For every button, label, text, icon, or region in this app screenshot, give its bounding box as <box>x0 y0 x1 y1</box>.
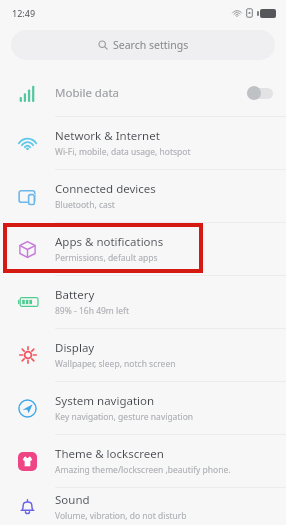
staticText: Network & Internet <box>55 128 160 144</box>
staticText: Theme & lockscreen <box>55 446 164 462</box>
staticText: Wi-Fi, mobile, data usage, hotspot <box>55 146 191 158</box>
other: Battery <box>18 296 38 308</box>
other: Apps and notifications <box>18 240 37 259</box>
button[interactable]: Network and Internet <box>0 117 286 169</box>
staticText: Wallpaper, sleep, notch screen <box>55 358 176 370</box>
other: Theme and lockscreen <box>18 452 37 471</box>
staticText: Permissions, default apps <box>55 252 158 264</box>
staticText: Amazing theme/lockscreen ,beautify phone… <box>55 464 231 476</box>
button[interactable]: Connected devices <box>0 170 286 222</box>
button[interactable]: Battery <box>0 276 286 328</box>
other: Sound <box>19 498 36 515</box>
button[interactable]: Display <box>0 329 286 381</box>
button[interactable]: System navigation <box>0 382 286 434</box>
staticText: 12:49 <box>12 7 36 19</box>
other: Network and Internet <box>18 134 37 153</box>
staticText: System navigation <box>55 393 155 409</box>
other: System navigation <box>18 399 37 418</box>
button[interactable]: Apps and notifications <box>0 223 286 275</box>
other: Mobile data <box>19 85 36 102</box>
staticText: Key navigation, gesture navigation <box>55 411 194 423</box>
button[interactable]: Sound <box>0 488 286 525</box>
staticText: Volume, vibration, do not disturb <box>55 510 187 522</box>
other: Display <box>19 346 37 364</box>
button[interactable]: Search settings <box>11 30 275 60</box>
staticText: Sound <box>55 492 90 508</box>
staticText: Mobile data <box>55 85 247 101</box>
staticText: Battery <box>55 287 95 303</box>
button[interactable]: Theme and lockscreen <box>0 435 286 487</box>
other: Connected devices <box>18 187 37 206</box>
staticText: Display <box>55 340 95 356</box>
staticText: Bluetooth, cast <box>55 199 115 211</box>
button[interactable]: Mobile data <box>0 70 286 116</box>
staticText: Search settings <box>113 38 189 52</box>
staticText: 89% - 16h 49m left <box>55 305 129 317</box>
staticText: Apps & notifications <box>55 234 164 250</box>
staticText: Connected devices <box>55 181 156 197</box>
